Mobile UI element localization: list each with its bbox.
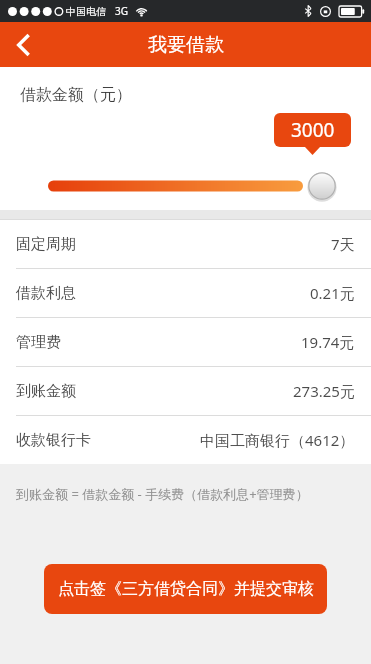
button[interactable]: 到账金额 (0, 367, 371, 416)
staticText: 19.74元 (301, 332, 355, 352)
staticText: 借款金额（元） (20, 85, 132, 105)
button[interactable]: 管理费 (0, 318, 371, 367)
staticText: 0.21元 (310, 283, 355, 303)
button[interactable]: 点击签《三方借贷合同》并提交审核 (44, 564, 327, 614)
staticText: 借款利息 (16, 284, 76, 303)
button[interactable]: 固定周期 (0, 220, 371, 269)
staticText: 到账金额 (16, 382, 76, 401)
staticText: 273.25元 (293, 381, 355, 401)
staticText: 中国工商银行（4612） (200, 430, 355, 450)
staticText: 7天 (331, 234, 355, 254)
staticText: 我要借款 (148, 33, 224, 57)
staticText: 管理费 (16, 333, 61, 352)
staticText: 中国电信 (66, 5, 106, 18)
button[interactable]: 收款银行卡 (0, 416, 371, 464)
staticText: 3G (115, 4, 128, 18)
staticText: 收款银行卡 (16, 431, 91, 450)
button[interactable]: Back (0, 22, 46, 67)
staticText: 点击签《三方借贷合同》并提交审核 (58, 579, 314, 599)
staticText: 3000 (291, 117, 335, 143)
staticText: 到账金额 = 借款金额 - 手续费（借款利息+管理费） (16, 485, 309, 503)
button[interactable]: 借款利息 (0, 269, 371, 318)
staticText: 固定周期 (16, 235, 76, 254)
